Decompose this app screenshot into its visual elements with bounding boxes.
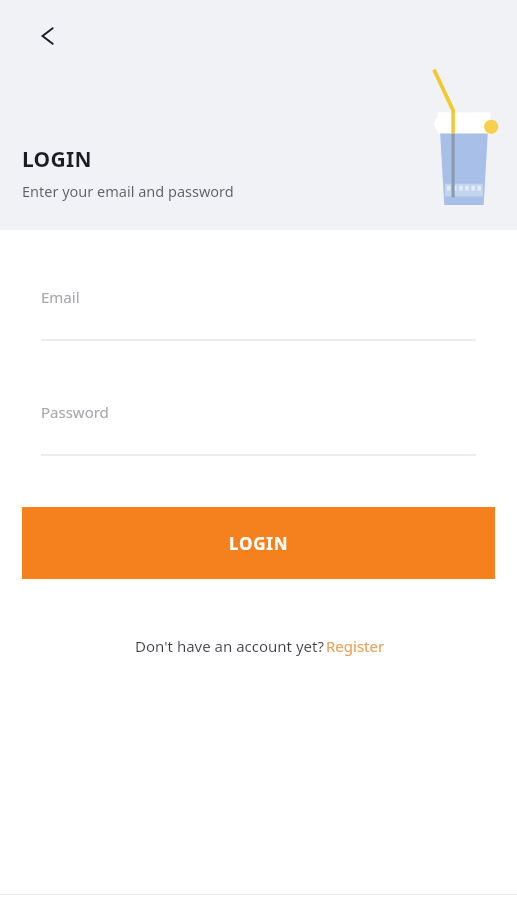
staticText: Enter your email and password: [22, 181, 234, 201]
staticText: Don't have an account yet?: [133, 636, 326, 656]
button[interactable]: Register: [326, 636, 385, 656]
button[interactable]: Password: [41, 389, 476, 456]
button[interactable]: Email: [41, 274, 476, 341]
staticText: Password: [41, 402, 109, 422]
staticText: LOGIN: [229, 532, 289, 555]
button[interactable]: Back: [22, 13, 67, 58]
staticText: Register: [326, 636, 385, 656]
staticText: Email: [41, 287, 80, 307]
staticText: LOGIN: [22, 145, 92, 174]
button[interactable]: LOGIN: [22, 507, 495, 579]
